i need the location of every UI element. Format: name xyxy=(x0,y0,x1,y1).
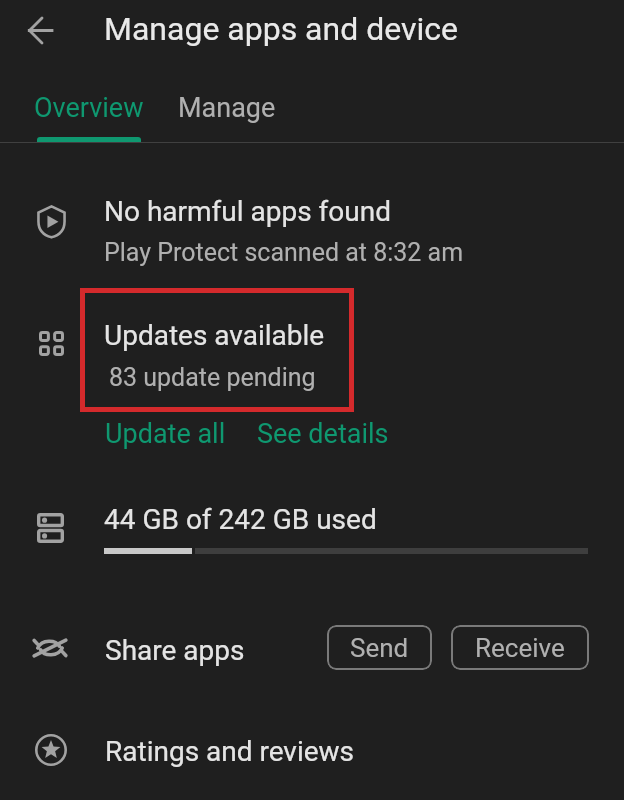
staticText: No harmful apps found xyxy=(104,195,391,228)
staticText: Manage apps and device xyxy=(104,10,458,48)
staticText: 83 update pending xyxy=(109,363,316,392)
staticText: Updates available xyxy=(104,319,325,352)
staticText: See details xyxy=(257,418,389,450)
staticText: Receive xyxy=(475,633,565,663)
button[interactable]: Receive xyxy=(451,625,589,670)
button[interactable]: Send xyxy=(327,625,432,670)
staticText: Update all xyxy=(105,418,226,450)
staticText: Play Protect scanned at 8:32 am xyxy=(104,238,464,267)
staticText: 44 GB of 242 GB used xyxy=(104,503,377,536)
button[interactable]: Back xyxy=(15,5,65,55)
button[interactable]: Updates available xyxy=(0,308,624,400)
button[interactable]: Update all xyxy=(96,413,235,455)
button[interactable]: 44 GB of 242 GB used xyxy=(0,494,624,570)
button[interactable]: Ratings and reviews xyxy=(0,722,624,784)
staticText: Share apps xyxy=(105,634,245,667)
staticText: Overview xyxy=(34,92,144,124)
staticText: Send xyxy=(350,633,409,663)
staticText: Ratings and reviews xyxy=(105,735,355,768)
button[interactable]: No harmful apps found xyxy=(0,184,624,272)
button[interactable]: See details xyxy=(248,413,398,455)
button[interactable]: Overview xyxy=(17,72,161,142)
staticText: Manage xyxy=(178,92,276,124)
button[interactable]: Manage xyxy=(160,72,293,142)
